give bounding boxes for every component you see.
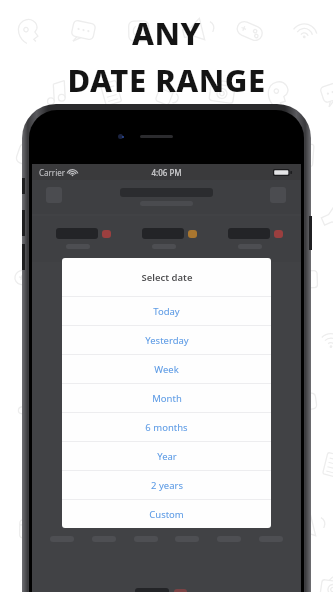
- button[interactable]: 2 years: [62, 471, 271, 499]
- staticText: Month: [152, 392, 182, 405]
- staticText: 4:06 PM: [32, 167, 301, 178]
- button[interactable]: 6 months: [62, 413, 271, 441]
- staticText: Carrier: [39, 167, 66, 178]
- button[interactable]: Today: [62, 297, 271, 325]
- staticText: DATE RANGE: [67, 59, 266, 101]
- staticText: Year: [157, 450, 177, 463]
- staticText: 2 years: [151, 479, 183, 492]
- staticText: Custom: [149, 508, 184, 521]
- staticText: ANY: [132, 12, 201, 54]
- staticText: Week: [154, 363, 179, 376]
- button[interactable]: Week: [62, 355, 271, 383]
- staticText: Yesterday: [145, 334, 189, 347]
- staticText: Today: [153, 305, 180, 318]
- button[interactable]: Year: [62, 442, 271, 470]
- button[interactable]: Custom: [62, 500, 271, 528]
- staticText: 6 months: [145, 421, 188, 434]
- button[interactable]: Month: [62, 384, 271, 412]
- staticText: Select date: [141, 271, 193, 284]
- button[interactable]: Yesterday: [62, 326, 271, 354]
